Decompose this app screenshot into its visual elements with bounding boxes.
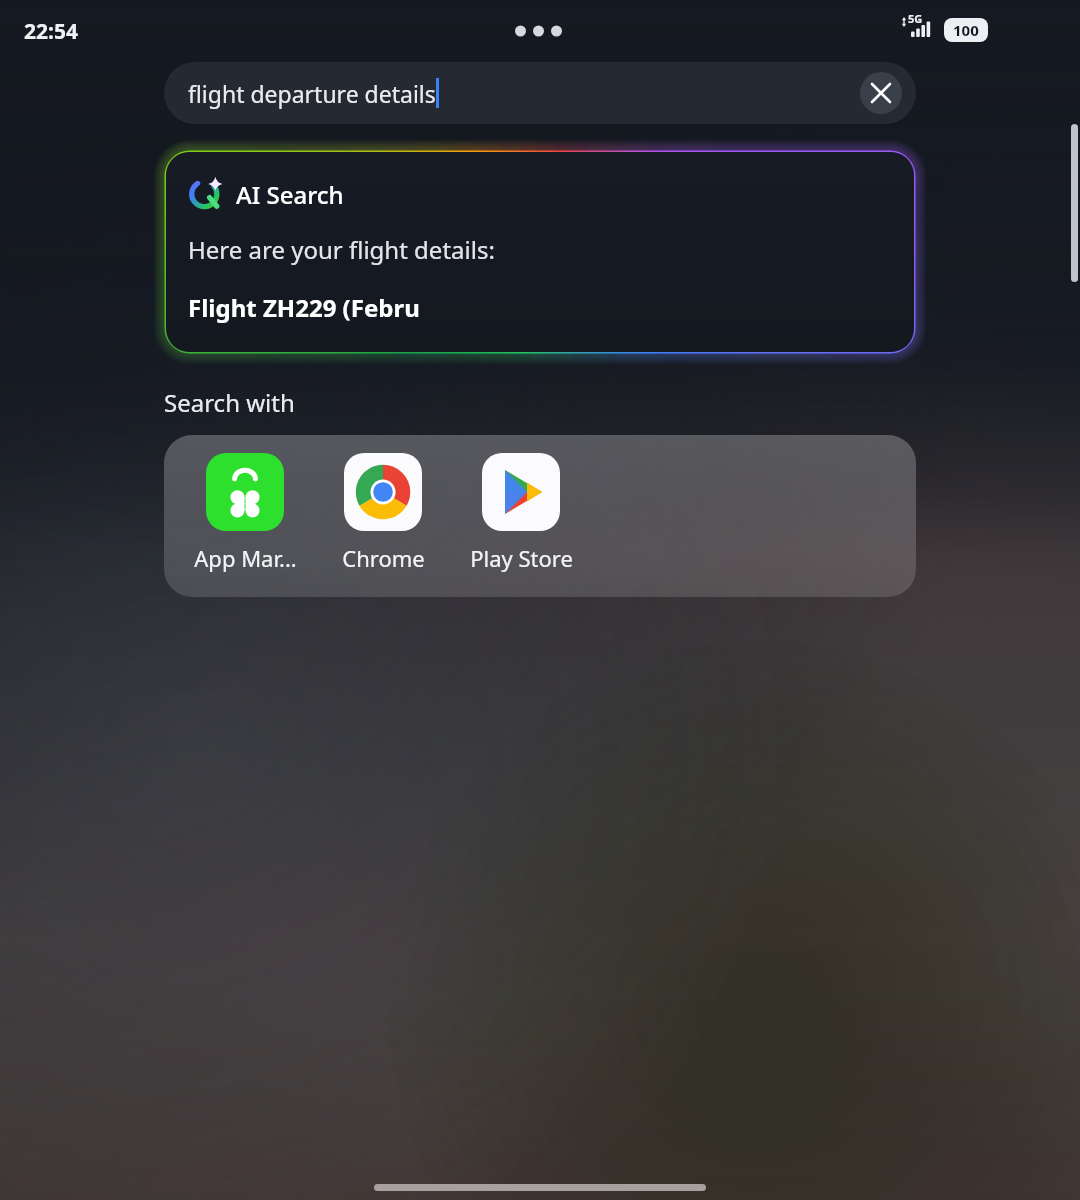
- button[interactable]: App Mar...: [186, 453, 304, 573]
- staticText: 5G: [908, 11, 923, 26]
- staticText: Chrome: [342, 543, 425, 573]
- button[interactable]: AI Search: [166, 152, 914, 352]
- staticText: Search with: [164, 386, 295, 419]
- staticText: AI Search: [236, 178, 344, 211]
- staticText: flight departure details: [188, 78, 436, 109]
- staticText: App Mar...: [194, 543, 297, 573]
- staticText: 100: [953, 20, 979, 40]
- button[interactable]: Play Store: [462, 453, 580, 573]
- button[interactable]: Chrome: [324, 453, 442, 573]
- button[interactable]: Clear search: [860, 72, 902, 114]
- staticText: Play Store: [470, 543, 573, 573]
- staticText: Flight ZH229 (Febru: [188, 291, 420, 324]
- button[interactable]: flight departure details: [164, 62, 916, 124]
- staticText: 22:54: [24, 17, 78, 46]
- staticText: Here are your flight details:: [188, 233, 495, 266]
